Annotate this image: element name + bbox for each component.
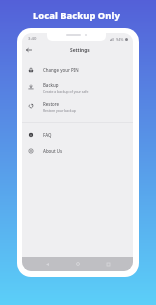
button[interactable]: Restore — [22, 97, 133, 116]
staticText: Restore — [43, 101, 60, 107]
staticText: Restore your backup — [43, 108, 76, 113]
staticText: Create a backup of your safe — [43, 89, 89, 94]
staticText: FAQ — [43, 132, 52, 138]
button[interactable]: Back — [41, 258, 53, 270]
button[interactable]: Recents — [102, 258, 114, 270]
staticText: Change your PIN — [43, 67, 79, 73]
button[interactable]: FAQ — [22, 127, 133, 143]
button[interactable]: Backup — [22, 78, 133, 97]
staticText: Local Backup Only — [33, 9, 120, 22]
staticText: 94% — [116, 37, 124, 42]
staticText: About Us — [43, 148, 63, 154]
staticText: Backup — [43, 82, 59, 88]
button[interactable]: Change your PIN — [22, 61, 133, 78]
button[interactable]: Home — [72, 258, 84, 270]
button[interactable]: About Us — [22, 143, 133, 159]
button[interactable]: Back — [24, 45, 34, 55]
staticText: 3:40 — [28, 36, 37, 42]
staticText: Settings — [70, 47, 90, 54]
